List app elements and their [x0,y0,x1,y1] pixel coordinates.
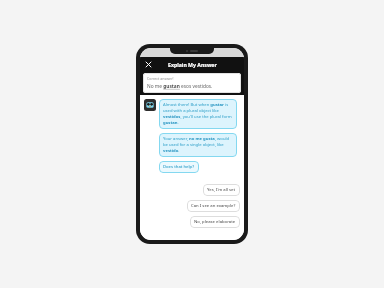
staticText: Explain My Answer [168,61,217,68]
button[interactable]: Almost there! But when gustar is used wi… [159,99,237,129]
staticText: Yes, I'm all set [207,187,236,193]
staticText: Correct answer! [147,76,174,81]
button[interactable]: No, please elaborate [190,216,240,228]
staticText: No me gustan esos vestidos. [147,83,213,90]
staticText: Almost there! But when gustar is used wi… [163,102,233,126]
staticText: Does that help? [163,164,195,170]
button[interactable]: Close [143,59,153,69]
button[interactable]: Your answer, no me gusta, would be used … [159,133,237,157]
staticText: Your answer, no me gusta, would be used … [163,136,233,154]
button[interactable]: Does that help? [159,161,199,173]
button[interactable]: Can I see an example? [187,200,240,212]
staticText: No, please elaborate [194,219,236,225]
button[interactable]: Yes, I'm all set [203,184,240,196]
staticText: Can I see an example? [191,203,236,209]
